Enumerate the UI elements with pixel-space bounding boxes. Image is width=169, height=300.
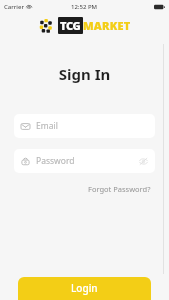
- staticText: Forgot Password?: [88, 184, 151, 194]
- staticText: Sign In: [0, 64, 169, 84]
- button[interactable]: Email: [14, 114, 155, 138]
- staticText: Login: [71, 281, 98, 295]
- button[interactable]: Forgot Password?: [86, 182, 153, 196]
- staticText: Email: [36, 120, 148, 132]
- staticText: Carrier: [4, 3, 24, 11]
- button[interactable]: Show password: [139, 157, 148, 166]
- button[interactable]: Login: [18, 277, 151, 300]
- button[interactable]: Password: [14, 149, 155, 173]
- staticText: MARKET: [83, 18, 131, 33]
- staticText: Password: [36, 155, 139, 167]
- staticText: 12:52 PM: [71, 3, 98, 11]
- staticText: TCG: [60, 18, 81, 33]
